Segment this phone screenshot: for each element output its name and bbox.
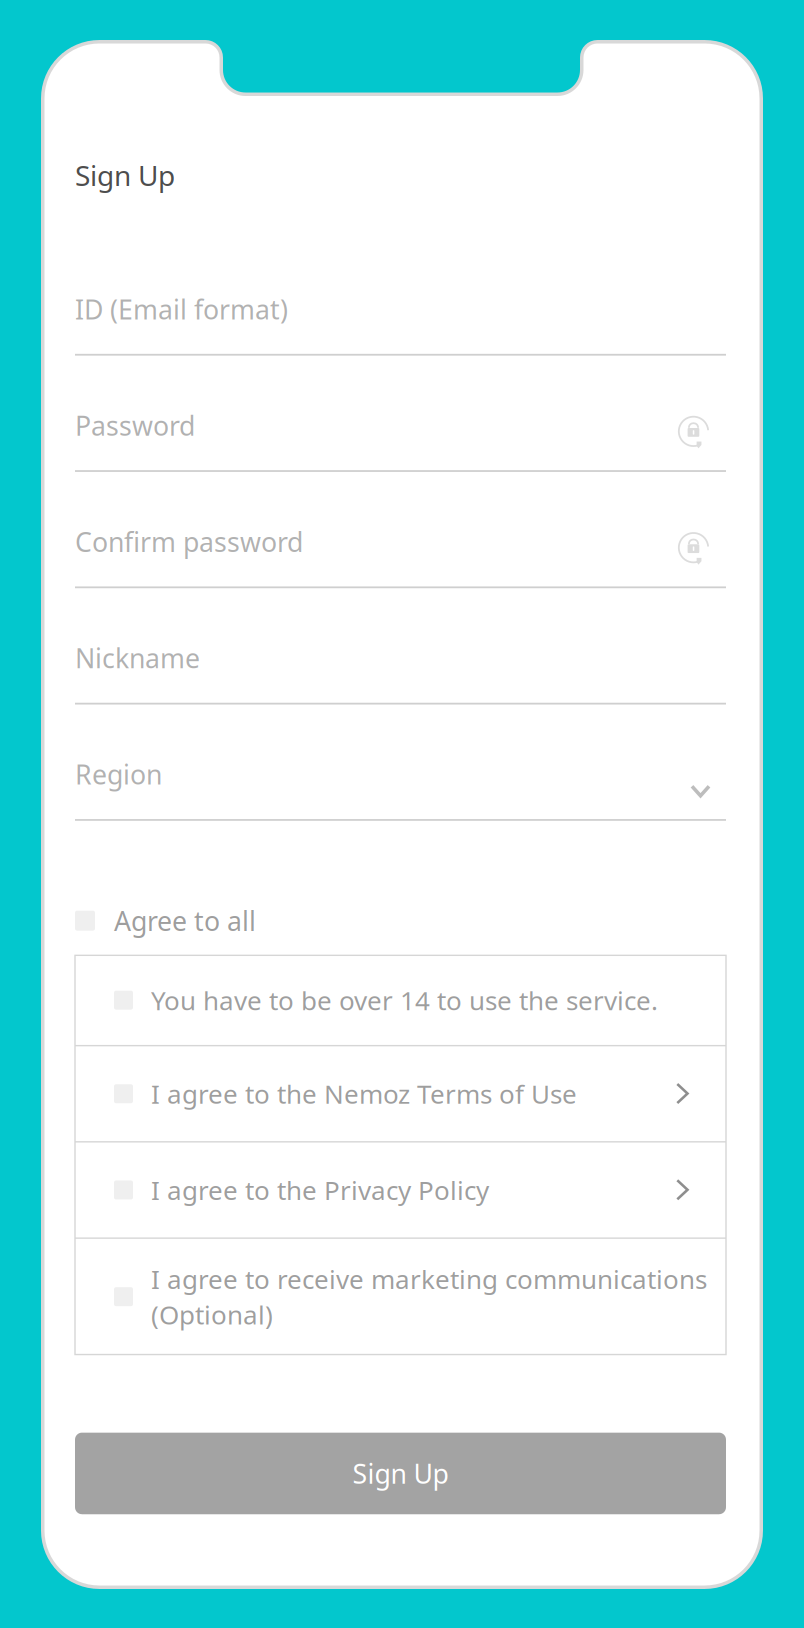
button[interactable]: Nickname xyxy=(75,588,726,704)
button[interactable]: Region xyxy=(75,704,726,821)
staticText: Sign Up xyxy=(352,1455,448,1492)
staticText: Region xyxy=(75,756,162,792)
staticText: Sign Up xyxy=(75,156,175,194)
staticText: Confirm password xyxy=(75,523,303,560)
button[interactable]: ID (Email format) xyxy=(75,239,726,356)
staticText: I agree to receive marketing communicati… xyxy=(151,1261,707,1332)
button[interactable]: Sign Up xyxy=(75,1433,726,1514)
staticText: ID (Email format) xyxy=(75,291,288,327)
staticText: Nickname xyxy=(75,640,200,676)
button[interactable]: I agree to the Nemoz Terms of Use xyxy=(75,1046,726,1141)
staticText: Agree to all xyxy=(114,902,256,939)
button[interactable]: I agree to the Privacy Policy xyxy=(75,1142,726,1237)
staticText: I agree to the Nemoz Terms of Use xyxy=(151,1076,577,1111)
staticText: You have to be over 14 to use the servic… xyxy=(151,982,658,1018)
staticText: I agree to the Privacy Policy xyxy=(151,1172,489,1208)
button[interactable]: You have to be over 14 to use the servic… xyxy=(75,955,726,1045)
button[interactable]: Agree to all xyxy=(75,911,726,931)
button[interactable]: Confirm password xyxy=(75,472,726,588)
button[interactable]: I agree to receive marketing communicati… xyxy=(75,1239,726,1354)
button[interactable]: Password xyxy=(75,356,726,472)
staticText: Password xyxy=(75,407,195,443)
